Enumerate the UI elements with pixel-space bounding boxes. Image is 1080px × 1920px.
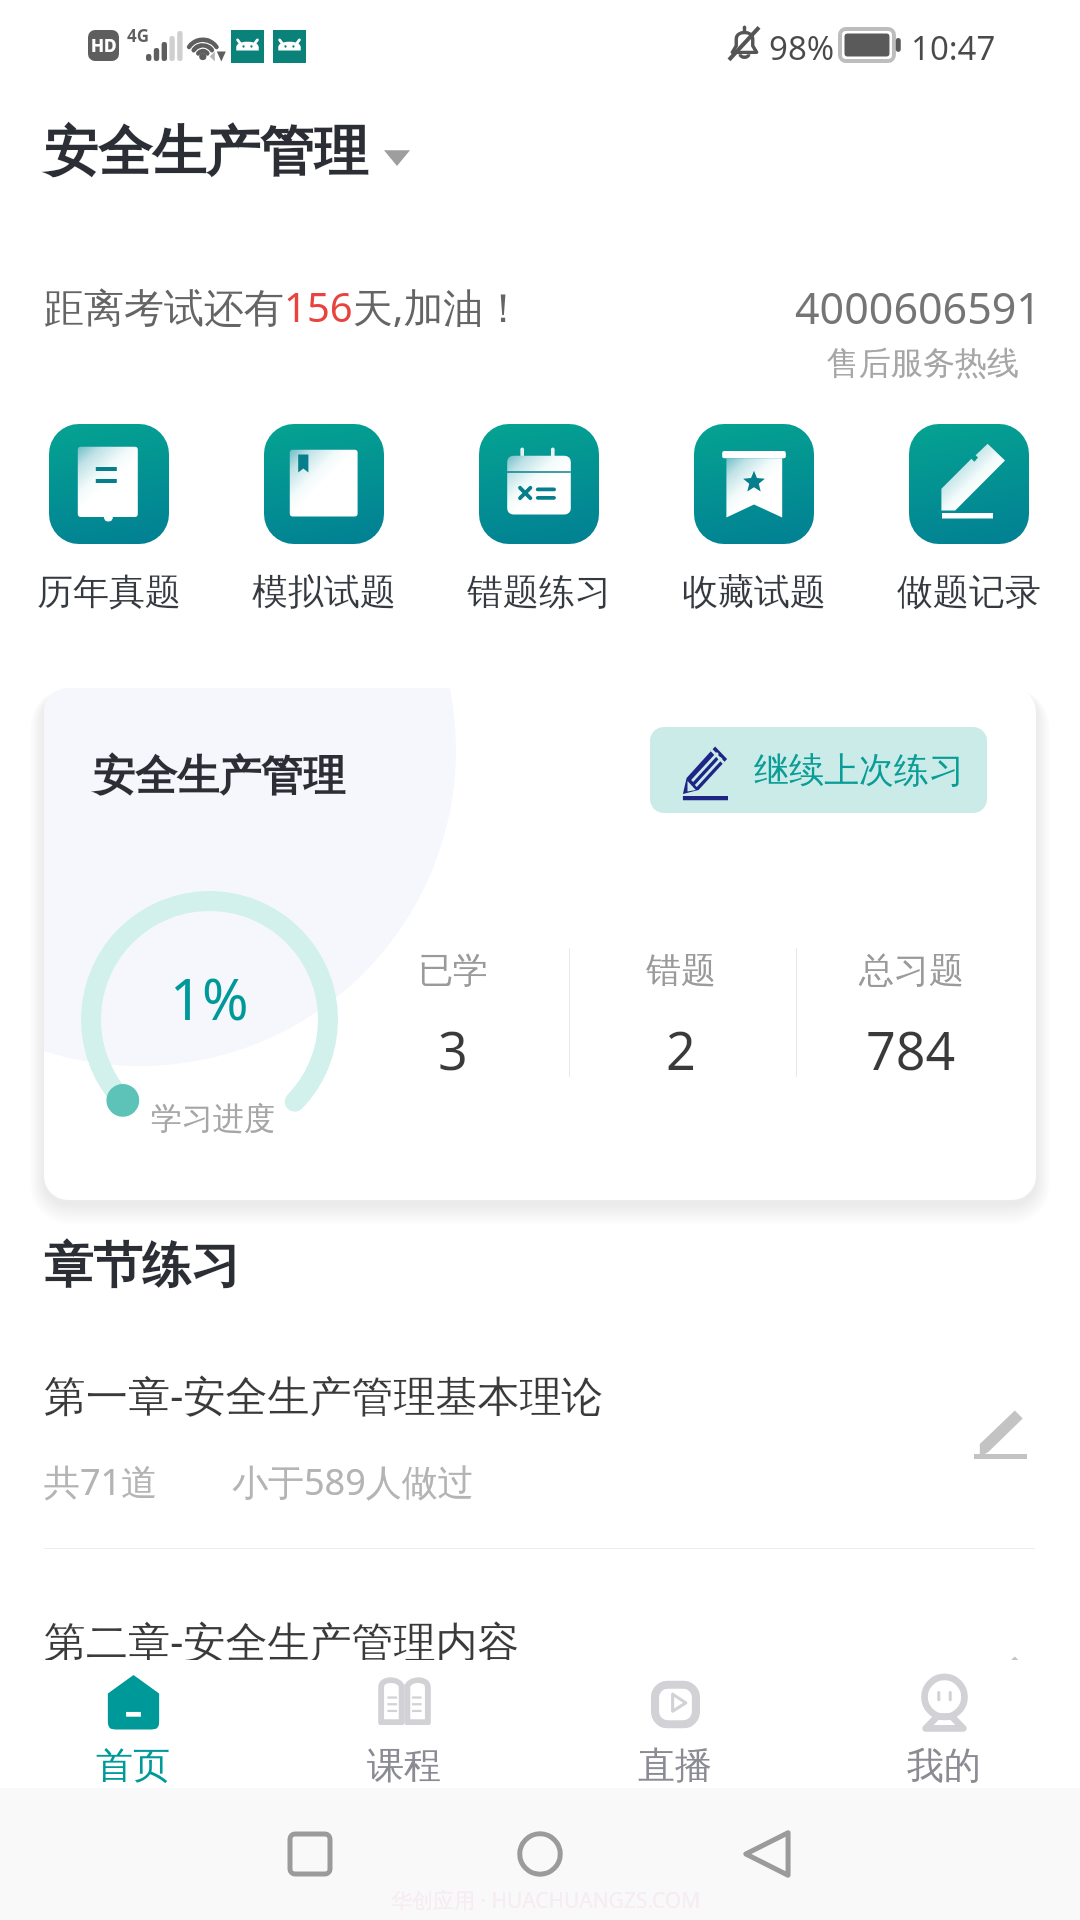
staticText: 小于521人做过	[232, 1703, 474, 1752]
staticText: 首页	[96, 1742, 170, 1788]
staticText: 学习进度	[151, 1099, 275, 1138]
staticText: 华创应用 · HUACHUANGZS.COM	[391, 1886, 701, 1915]
button[interactable]: 首页	[33, 1666, 233, 1788]
staticText: 第一章-安全生产管理基本理论	[44, 1366, 604, 1423]
button[interactable]: 课程	[304, 1666, 504, 1788]
button[interactable]: 收藏试题	[655, 424, 853, 614]
staticText: 错题练习	[467, 569, 611, 614]
staticText: 距离考试还有156天,加油！	[44, 279, 524, 334]
staticText: 4G	[127, 24, 150, 47]
staticText: 章节练习	[44, 1235, 240, 1297]
staticText: 1%	[170, 960, 249, 1036]
staticText: 错题	[646, 948, 716, 992]
staticText: 历年真题	[37, 569, 181, 614]
staticText: 已学	[418, 948, 488, 992]
staticText: 收藏试题	[682, 569, 826, 614]
button[interactable]: 错题练习	[440, 424, 638, 614]
button[interactable]: 主页	[488, 1802, 592, 1906]
staticText: 10:47	[911, 25, 996, 70]
button[interactable]: 第二章-安全生产管理内容	[44, 1576, 1035, 1762]
staticText: 课程	[367, 1742, 441, 1788]
button[interactable]: 历年真题	[10, 424, 208, 614]
button[interactable]: 安全生产管理	[44, 688, 1036, 1200]
other: 开始练习	[974, 1408, 1027, 1458]
staticText: 我的	[907, 1742, 981, 1788]
staticText: 98%	[769, 25, 835, 70]
staticText: 共68道	[44, 1703, 158, 1752]
button[interactable]: 我的	[844, 1666, 1044, 1788]
staticText: 售后服务热线	[827, 343, 1019, 383]
button[interactable]: 模拟试题	[225, 424, 423, 614]
staticText: 2	[666, 1014, 696, 1085]
other: 开始练习	[974, 1654, 1027, 1704]
staticText: HD	[91, 34, 117, 57]
staticText: 784	[866, 1014, 956, 1085]
button[interactable]: 做题记录	[870, 424, 1068, 614]
staticText: 3	[438, 1014, 468, 1085]
button[interactable]: 直播	[575, 1666, 775, 1788]
button[interactable]: 安全生产管理	[44, 118, 410, 186]
button[interactable]: 继续上次练习	[650, 727, 987, 813]
staticText: 继续上次练习	[754, 748, 964, 792]
staticText: 第二章-安全生产管理内容	[44, 1612, 520, 1669]
button[interactable]: 第一章-安全生产管理基本理论	[44, 1330, 1035, 1516]
staticText: 直播	[638, 1742, 712, 1788]
staticText: 共71道	[44, 1457, 158, 1506]
staticText: 4000606591	[795, 278, 1041, 337]
staticText: 模拟试题	[252, 569, 396, 614]
staticText: 安全生产管理	[93, 750, 345, 803]
staticText: 做题记录	[897, 569, 1041, 614]
staticText: 安全生产管理	[44, 118, 368, 186]
button[interactable]: 最近任务	[258, 1802, 362, 1906]
button[interactable]: 返回	[714, 1802, 818, 1906]
staticText: 总习题	[859, 948, 964, 992]
staticText: 小于589人做过	[232, 1457, 474, 1506]
